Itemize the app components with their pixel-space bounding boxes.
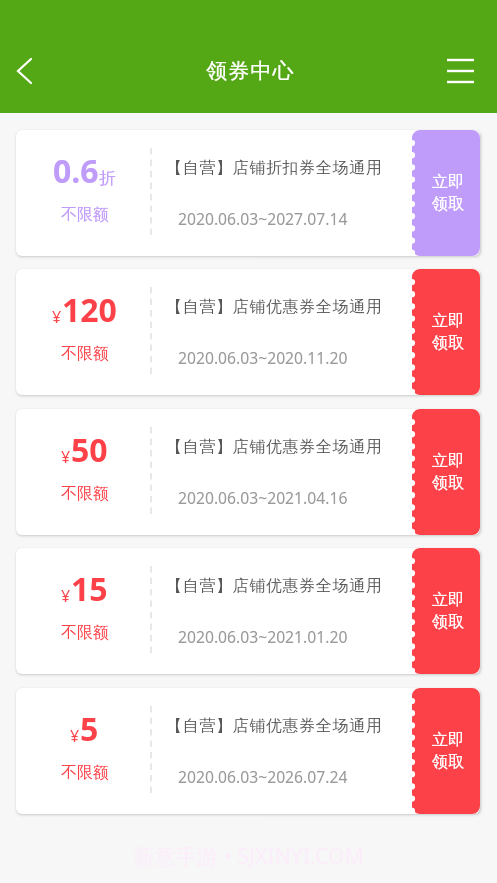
button[interactable]: 立即 — [412, 688, 480, 814]
staticText: 立即 — [432, 311, 464, 331]
button[interactable] — [16, 130, 480, 256]
staticText: 2020.06.03~2021.04.16 — [178, 487, 348, 508]
staticText: 立即 — [432, 590, 464, 610]
button[interactable]: Back — [2, 49, 46, 93]
staticText: 立即 — [432, 730, 464, 750]
staticText: 【自营】店铺优惠券全场通用 — [166, 437, 383, 457]
staticText: 新意手游 • SJXINYI.COM — [133, 842, 364, 871]
button[interactable]: 立即 — [412, 409, 480, 535]
staticText: ¥ — [61, 446, 71, 468]
staticText: 不限额 — [61, 763, 109, 783]
button[interactable] — [16, 548, 480, 674]
staticText: ¥ — [61, 585, 71, 607]
button[interactable] — [16, 269, 480, 395]
staticText: 【自营】店铺优惠券全场通用 — [166, 576, 383, 596]
staticText: 0.6 — [53, 149, 99, 193]
staticText: ¥ — [70, 725, 80, 747]
staticText: 折 — [99, 168, 116, 189]
staticText: 2020.06.03~2021.01.20 — [178, 626, 348, 647]
staticText: ¥ — [52, 306, 62, 328]
staticText: 领券中心 — [206, 58, 295, 84]
staticText: 立即 — [432, 451, 464, 471]
staticText: 立即 — [432, 172, 464, 192]
staticText: 【自营】店铺优惠券全场通用 — [166, 297, 383, 317]
staticText: 2020.06.03~2020.11.20 — [178, 347, 348, 368]
staticText: 不限额 — [61, 484, 109, 504]
staticText: 50 — [71, 428, 108, 472]
staticText: 2020.06.03~2026.07.24 — [178, 766, 348, 787]
staticText: 【自营】店铺优惠券全场通用 — [166, 716, 383, 736]
button[interactable] — [16, 688, 480, 814]
staticText: 领取 — [432, 612, 464, 632]
staticText: 120 — [62, 288, 117, 332]
button[interactable]: 立即 — [412, 269, 480, 395]
button[interactable] — [16, 409, 480, 535]
staticText: 不限额 — [61, 344, 109, 364]
staticText: 【自营】店铺折扣券全场通用 — [166, 158, 383, 178]
staticText: 领取 — [432, 752, 464, 772]
staticText: 不限额 — [61, 205, 109, 225]
staticText: 15 — [71, 567, 108, 611]
staticText: 领取 — [432, 333, 464, 353]
staticText: 不限额 — [61, 623, 109, 643]
button[interactable]: 立即 — [412, 130, 480, 256]
staticText: 领取 — [432, 194, 464, 214]
button[interactable]: Menu — [438, 49, 482, 93]
staticText: 2020.06.03~2027.07.14 — [178, 208, 348, 229]
button[interactable]: 立即 — [412, 548, 480, 674]
staticText: 5 — [80, 707, 99, 751]
staticText: 领取 — [432, 473, 464, 493]
